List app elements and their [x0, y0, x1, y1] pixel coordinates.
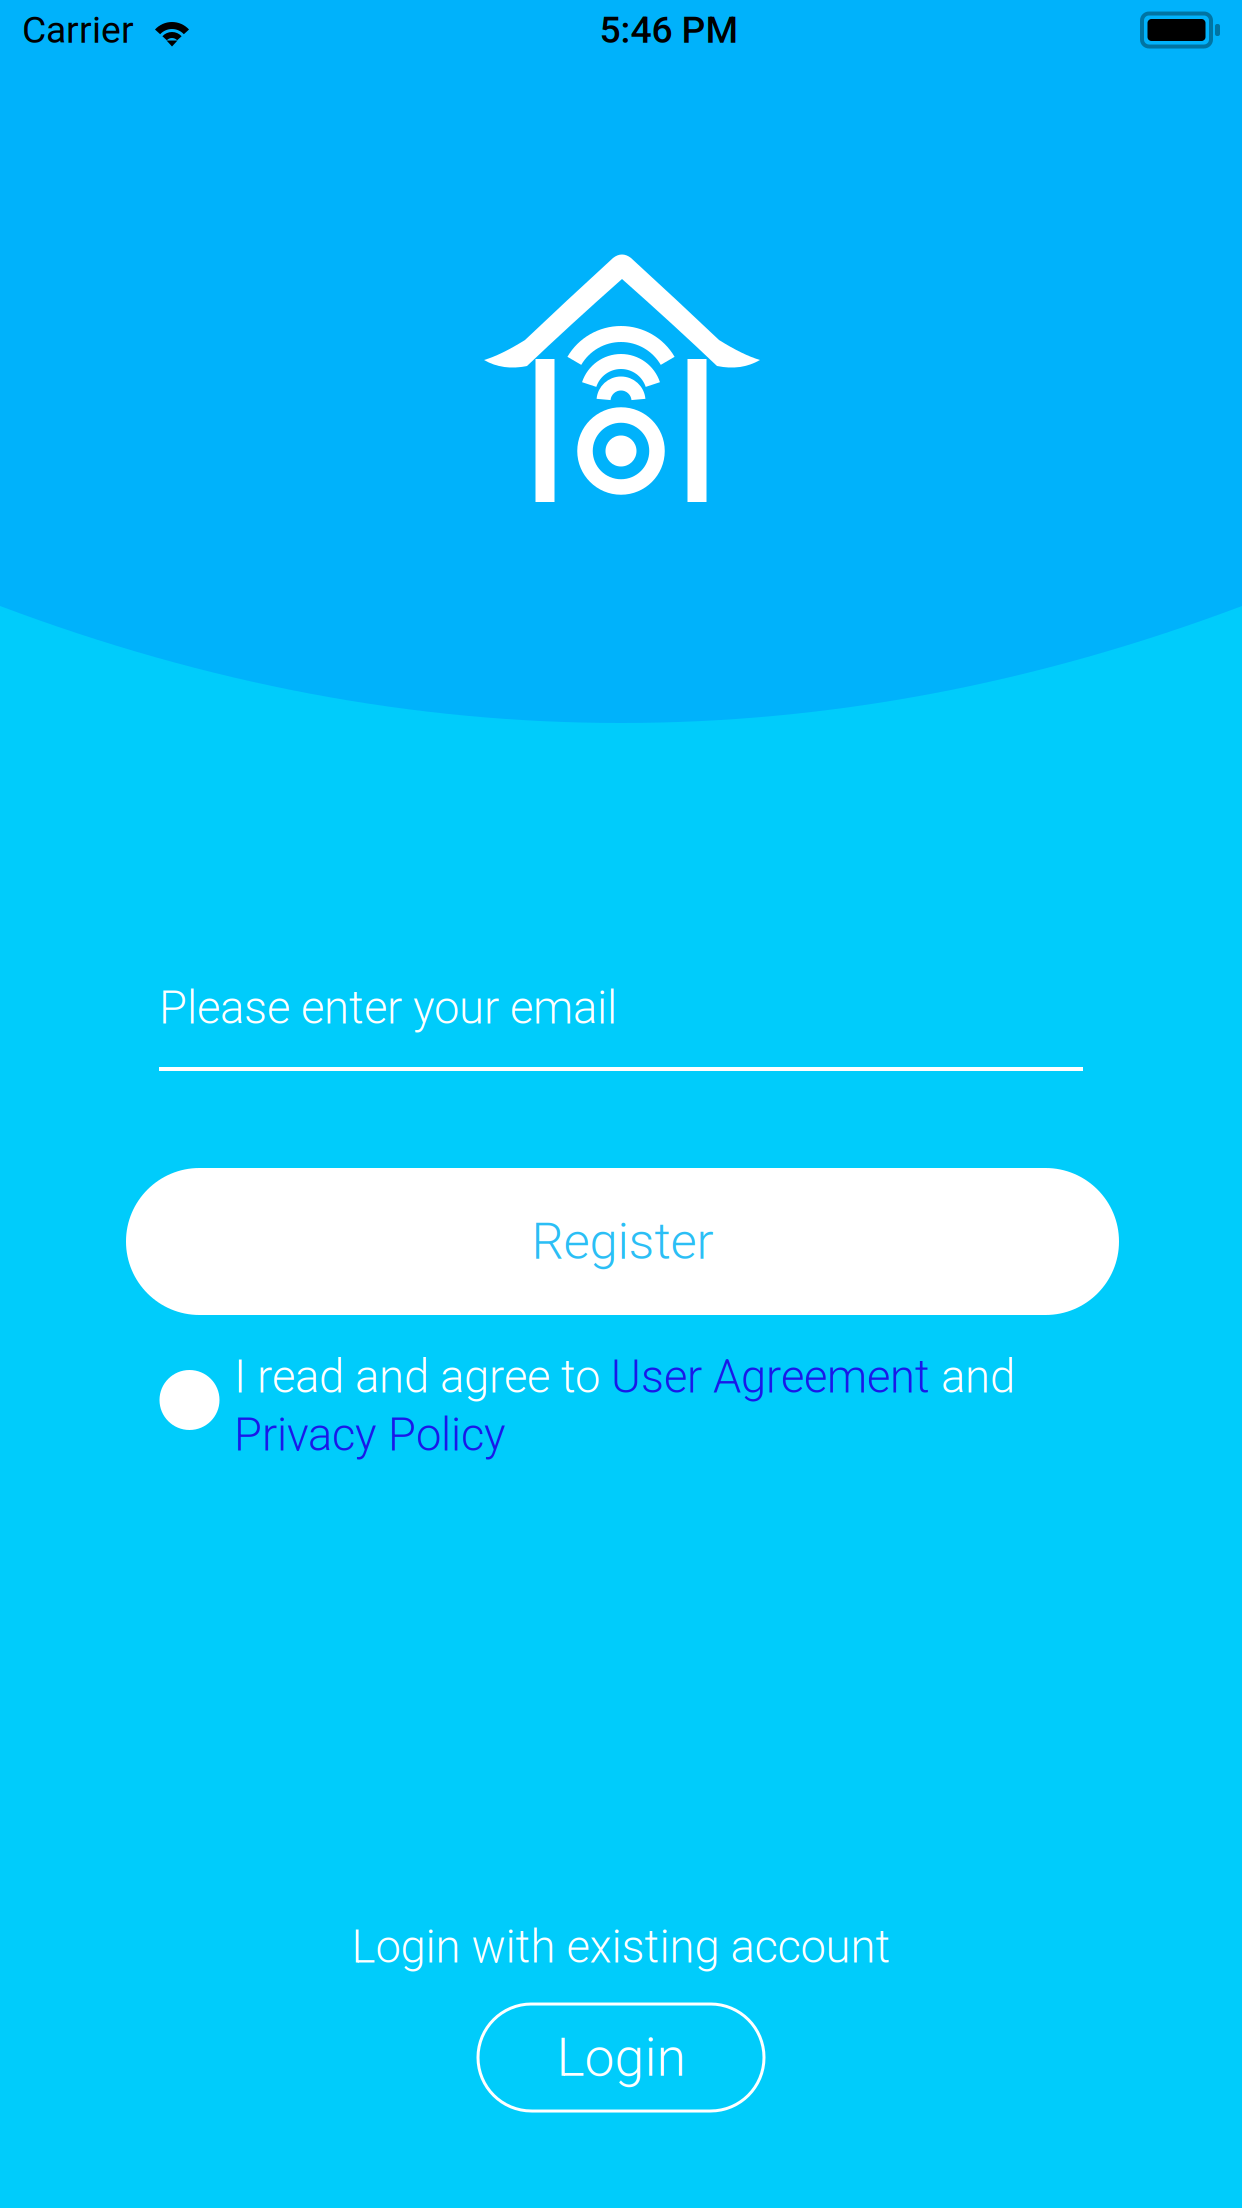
- staticText: User Agreement: [611, 1350, 930, 1403]
- staticText: I read and agree to: [234, 1350, 611, 1403]
- button[interactable]: Login: [478, 2004, 764, 2111]
- button[interactable]: Register: [126, 1168, 1119, 1315]
- staticText: Privacy Policy: [234, 1408, 506, 1461]
- button[interactable]: Login with existing account: [0, 1922, 1242, 1972]
- button[interactable]: Please enter your email: [159, 983, 1083, 1071]
- staticText: Register: [531, 1212, 713, 1271]
- staticText: 5:46 PM: [599, 8, 738, 52]
- button[interactable]: Privacy Policy: [234, 1406, 524, 1464]
- staticText: Carrier: [22, 8, 134, 52]
- staticText: Login with existing account: [351, 1920, 890, 1973]
- button[interactable]: I agree to the User Agreement and Privac…: [152, 1340, 227, 1460]
- button[interactable]: User Agreement: [611, 1350, 930, 1403]
- staticText: and: [930, 1350, 1015, 1403]
- staticText: Login: [556, 2026, 685, 2089]
- staticText: Please enter your email: [159, 981, 617, 1034]
